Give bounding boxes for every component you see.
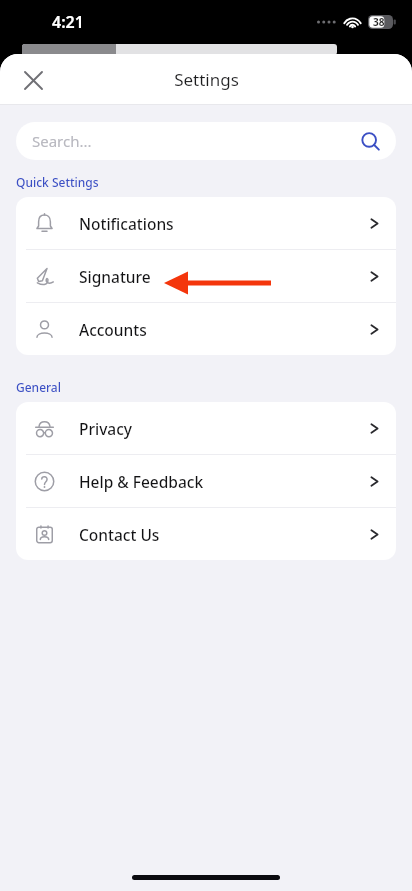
- staticText: Settings: [174, 68, 239, 91]
- staticText: Notifications: [79, 213, 174, 234]
- staticText: Signature: [79, 266, 151, 287]
- staticText: Search...: [32, 131, 92, 151]
- button[interactable]: Close: [12, 59, 54, 101]
- staticText: Privacy: [79, 418, 133, 439]
- button[interactable]: Help & Feedback: [16, 455, 396, 507]
- staticText: 4:21: [52, 11, 84, 33]
- button[interactable]: Signature: [16, 250, 396, 302]
- button[interactable]: Privacy: [16, 402, 396, 454]
- staticText: Help & Feedback: [79, 471, 204, 492]
- staticText: Quick Settings: [16, 174, 99, 190]
- button[interactable]: Notifications: [16, 197, 396, 249]
- staticText: Accounts: [79, 319, 147, 340]
- button[interactable]: Contact Us: [16, 508, 396, 560]
- staticText: 38: [373, 15, 385, 29]
- button[interactable]: Accounts: [16, 303, 396, 355]
- button[interactable]: Search...: [16, 122, 396, 160]
- staticText: Contact Us: [79, 524, 160, 545]
- staticText: General: [16, 379, 61, 395]
